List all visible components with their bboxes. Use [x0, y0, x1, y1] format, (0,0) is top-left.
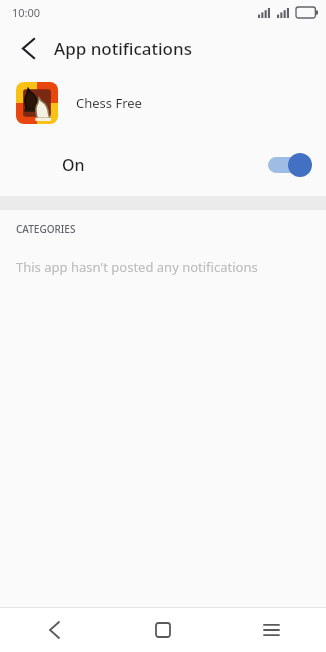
- staticText: CATEGORIES: [16, 222, 76, 236]
- button[interactable]: Recent apps: [217, 608, 326, 652]
- button[interactable]: Chess Free: [0, 72, 326, 134]
- button[interactable]: Back: [0, 608, 108, 652]
- button[interactable]: Home: [108, 608, 217, 652]
- staticText: This app hasn't posted any notifications: [16, 258, 258, 276]
- button[interactable]: On: [0, 134, 326, 196]
- staticText: 10:00: [12, 5, 41, 20]
- staticText: Chess Free: [76, 94, 142, 112]
- button[interactable]: Back: [8, 28, 48, 68]
- staticText: App notifications: [54, 37, 192, 60]
- staticText: On: [62, 154, 85, 176]
- other: Notifications on: [268, 153, 312, 177]
